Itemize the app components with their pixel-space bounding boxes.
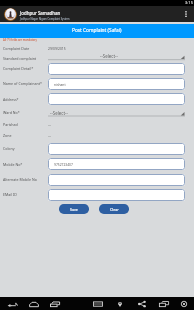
button[interactable]: Screenshot — [157, 297, 171, 310]
staticText: 9752723407 — [54, 162, 73, 166]
staticText: Address* — [3, 97, 19, 102]
staticText: --- — [48, 133, 52, 137]
staticText: Mobile No* — [3, 162, 23, 167]
button[interactable] — [48, 189, 185, 201]
button[interactable]: --Select-- — [48, 108, 185, 118]
staticText: Jodhpur Samadhan — [20, 10, 61, 16]
staticText: Ward No* — [3, 110, 20, 115]
staticText: --Select-- — [100, 53, 118, 59]
button[interactable]: Share — [135, 297, 149, 310]
staticText: Zone — [3, 133, 12, 138]
staticText: All (*) fields are mandatory — [3, 38, 37, 42]
staticText: Complaint Date — [3, 46, 30, 51]
staticText: EMail ID — [3, 192, 17, 197]
button[interactable] — [48, 143, 185, 155]
staticText: Parishad — [3, 122, 18, 127]
button[interactable]: Close — [177, 297, 191, 310]
button[interactable] — [48, 93, 185, 105]
button[interactable]: --Select-- — [48, 51, 185, 62]
button[interactable]: Clear — [99, 204, 129, 214]
staticText: Colony — [3, 146, 15, 151]
staticText: 29/09/2015 — [48, 46, 66, 50]
button[interactable]: More options — [178, 6, 194, 22]
button[interactable]: nishant — [48, 78, 185, 90]
staticText: Standard complaint — [3, 56, 37, 61]
staticText: Alternate Mobile No — [3, 177, 37, 182]
button[interactable]: Home — [27, 297, 41, 310]
staticText: Clear — [110, 207, 119, 212]
staticText: --Select-- — [50, 110, 68, 116]
staticText: --- — [48, 122, 52, 126]
staticText: nishant — [54, 82, 66, 86]
staticText: Complaint Detail* — [3, 66, 34, 71]
button[interactable]: Location — [113, 297, 127, 310]
staticText: 3:15 — [185, 0, 193, 5]
button[interactable] — [48, 63, 185, 75]
staticText: Save — [70, 207, 78, 212]
button[interactable]: Recent apps — [48, 297, 62, 310]
button[interactable]: Keyboard — [91, 297, 105, 310]
button[interactable]: Save — [59, 204, 89, 214]
staticText: Name of Complainant* — [3, 81, 43, 86]
button[interactable]: Back — [5, 297, 19, 310]
staticText: Jodhpur Nagar Nigam Complaint System — [20, 17, 70, 21]
staticText: Post Complaint (Safai) — [72, 27, 122, 34]
button[interactable] — [48, 174, 185, 186]
button[interactable]: 9752723407 — [48, 158, 185, 170]
